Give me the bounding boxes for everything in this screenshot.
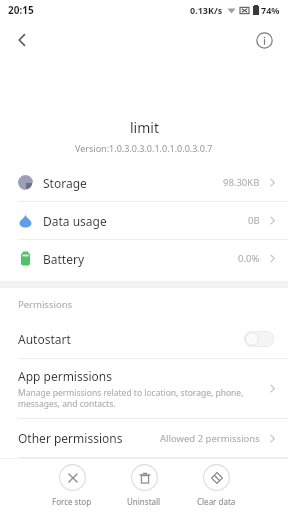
staticText: 20:15 <box>8 3 34 17</box>
staticText: Force stop <box>52 496 92 507</box>
staticText: limit <box>130 118 159 137</box>
staticText: 98.30KB <box>223 176 260 189</box>
button[interactable]: Clear data <box>187 462 245 509</box>
staticText: Storage <box>43 175 87 191</box>
button[interactable]: Uninstall <box>115 462 173 509</box>
staticText: App permissions <box>18 368 112 384</box>
staticText: Autostart <box>18 331 71 347</box>
button[interactable]: Back <box>6 24 38 56</box>
staticText: Version:1.0.3.0.3.0.1.0.1.0.0.3.0.7 <box>75 142 213 154</box>
staticText: Uninstall <box>127 496 161 507</box>
button[interactable]: Other permissions <box>0 419 288 457</box>
button[interactable]: Force stop <box>43 462 101 509</box>
button[interactable]: Autostart toggle <box>244 331 274 347</box>
staticText: 0.13K/s <box>190 4 223 16</box>
button[interactable]: Storage <box>0 164 288 201</box>
staticText: Permissions <box>18 298 73 311</box>
staticText: Clear data <box>197 496 236 507</box>
staticText: 0B <box>248 214 260 227</box>
staticText: 0.0% <box>238 252 260 265</box>
button[interactable]: Data usage <box>0 202 288 239</box>
button[interactable]: App permissions <box>0 359 288 418</box>
button[interactable]: Battery <box>0 240 288 277</box>
staticText: Other permissions <box>18 430 123 446</box>
staticText: 74% <box>261 4 280 16</box>
staticText: Manage permissions related to location, … <box>18 387 244 409</box>
button[interactable]: Autostart <box>0 320 288 358</box>
staticText: Data usage <box>43 213 107 229</box>
button[interactable]: App info <box>248 24 280 56</box>
staticText: Allowed 2 permissions <box>160 432 260 445</box>
staticText: Battery <box>43 251 85 267</box>
